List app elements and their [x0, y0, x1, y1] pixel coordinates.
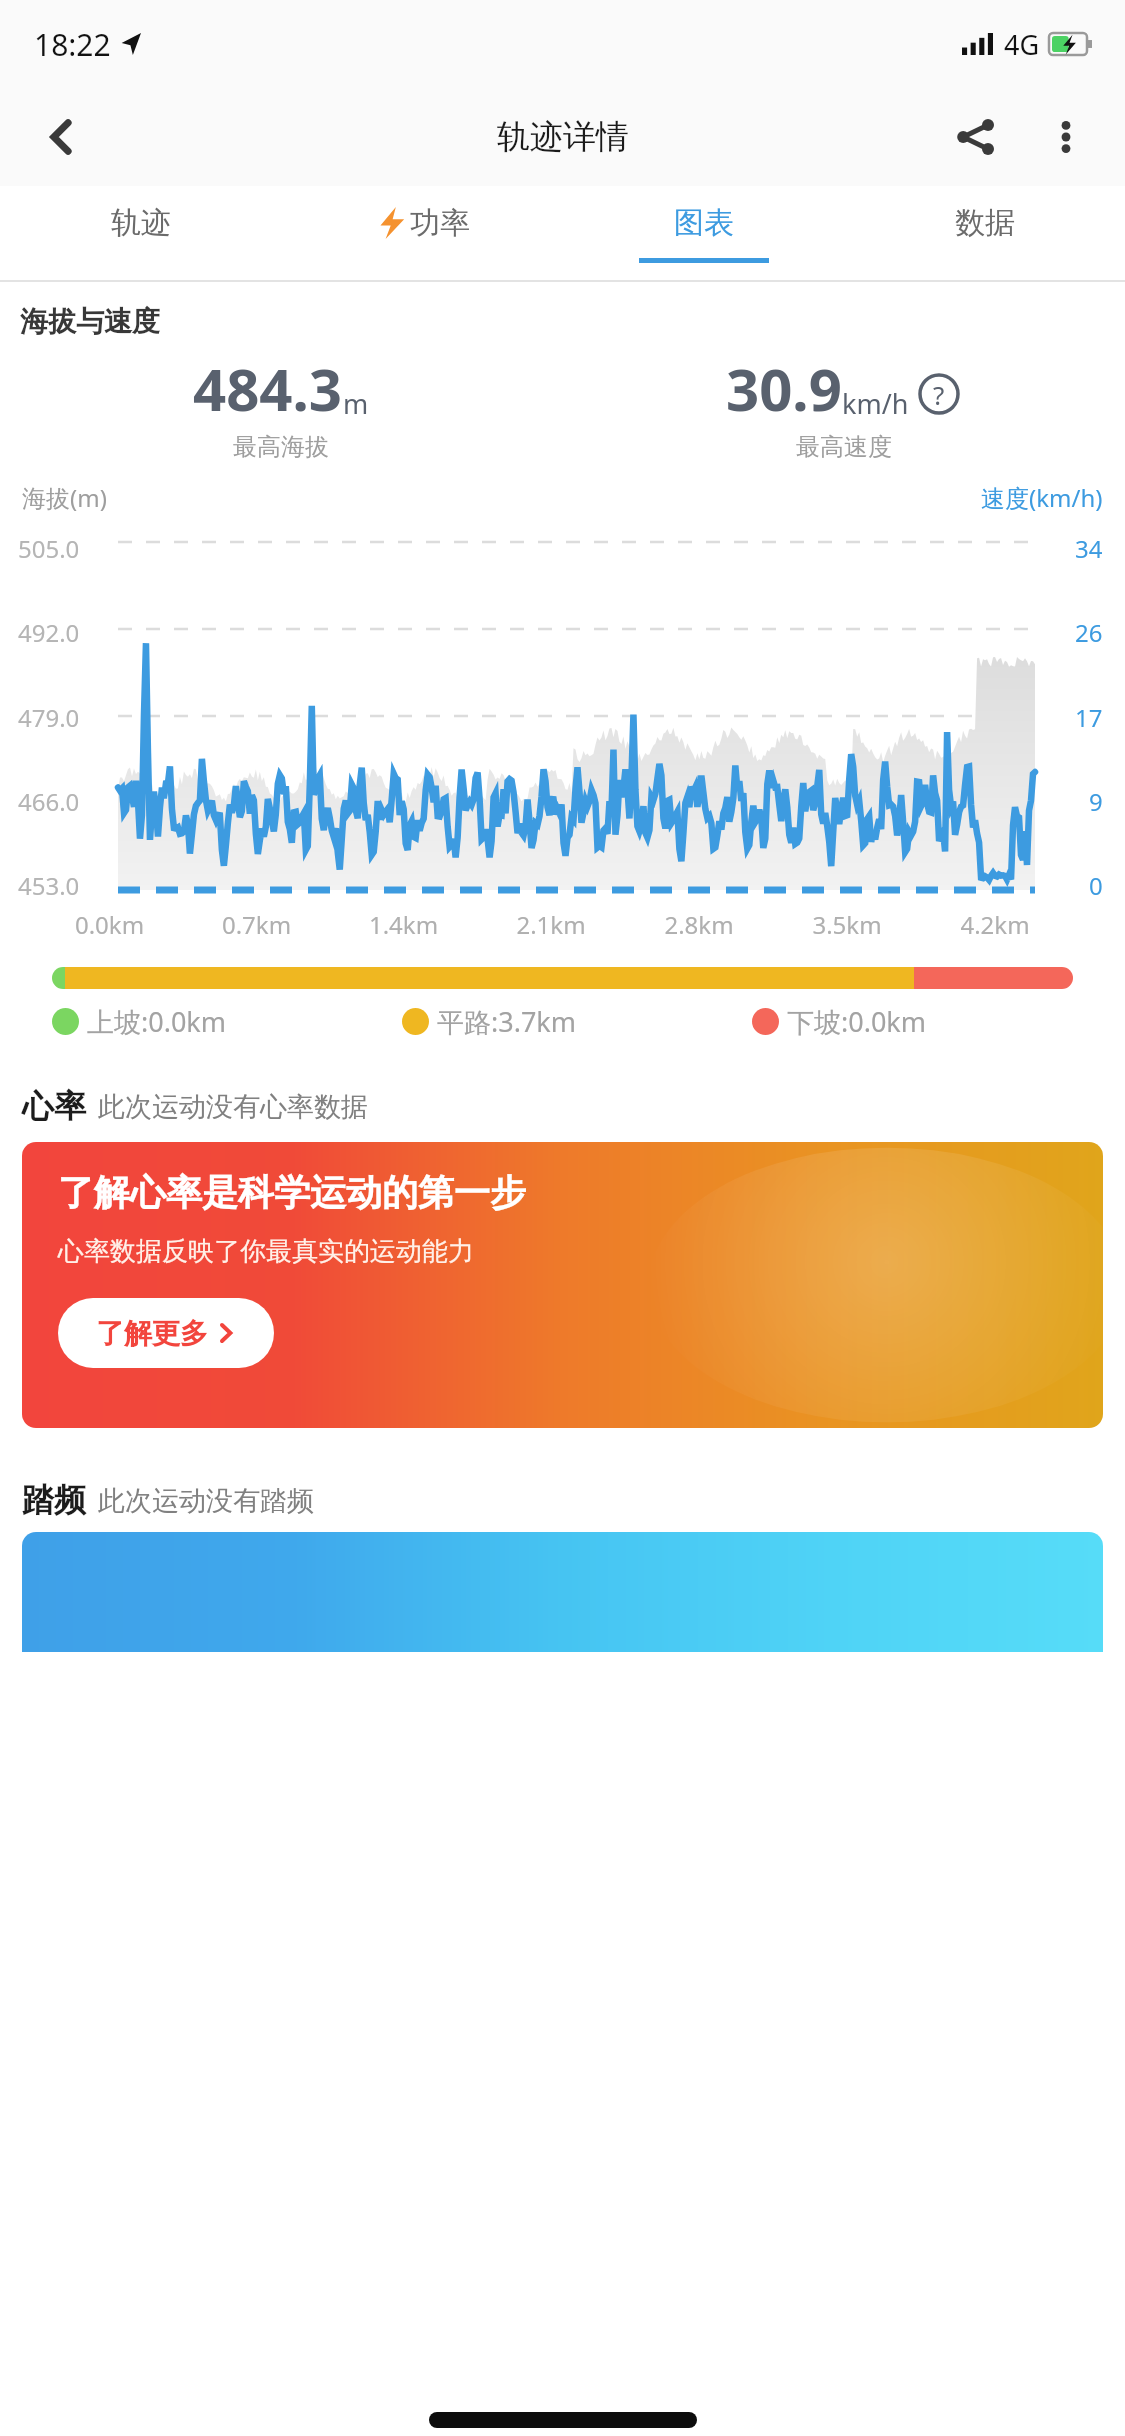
staticText: 最高海拔 — [233, 432, 329, 462]
staticText: 了解心率是科学运动的第一步 — [58, 1170, 526, 1215]
staticText: 26 — [1075, 616, 1103, 649]
staticText: 18:22 — [34, 24, 111, 65]
staticText: 功率 — [410, 204, 470, 242]
staticText: m — [343, 385, 369, 422]
staticText: 速度(km/h) — [981, 481, 1103, 514]
staticText: 最高速度 — [796, 432, 892, 462]
staticText: 轨迹 — [111, 204, 171, 242]
staticText: 踏频 — [22, 1480, 86, 1520]
staticText: 34 — [1075, 532, 1103, 565]
button[interactable]: 下坡:0.0km — [752, 1003, 1085, 1040]
staticText: 505.0 — [18, 532, 80, 565]
button[interactable]: Help — [917, 372, 961, 416]
staticText: 453.0 — [18, 869, 80, 902]
staticText: 此次运动没有踏频 — [98, 1484, 314, 1518]
button[interactable]: 轨迹 — [0, 186, 282, 280]
button[interactable] — [22, 1532, 1103, 1652]
staticText: ? — [933, 377, 945, 412]
staticText: 下坡:0.0km — [787, 1003, 927, 1040]
staticText: 466.0 — [18, 785, 80, 818]
staticText: 4.2km — [921, 908, 1069, 941]
button[interactable]: 功率 — [282, 186, 563, 280]
staticText: 2.8km — [625, 908, 773, 941]
staticText: 4G — [1004, 26, 1040, 63]
button[interactable]: Back — [22, 97, 102, 177]
staticText: 484.3 — [193, 349, 343, 428]
staticText: 海拔(m) — [22, 481, 107, 514]
staticText: 图表 — [674, 204, 734, 242]
button[interactable]: 了解更多 — [58, 1298, 274, 1368]
button[interactable]: Share — [931, 92, 1021, 182]
staticText: 心率 — [22, 1086, 86, 1126]
button[interactable]: 平路:3.7km — [402, 1003, 752, 1040]
staticText: 0.7km — [183, 908, 330, 941]
staticText: 海拔与速度 — [20, 304, 160, 339]
staticText: 479.0 — [18, 701, 80, 734]
staticText: 9 — [1089, 785, 1103, 818]
button[interactable]: More options — [1021, 92, 1111, 182]
staticText: 上坡:0.0km — [87, 1003, 227, 1040]
staticText: 492.0 — [18, 616, 80, 649]
staticText: 0 — [1089, 869, 1103, 902]
staticText: 2.1km — [477, 908, 625, 941]
staticText: 轨迹详情 — [497, 116, 629, 158]
button[interactable]: 了解心率是科学运动的第一步 — [22, 1142, 1103, 1428]
staticText: 0.0km — [36, 908, 183, 941]
staticText: 心率数据反映了你最真实的运动能力 — [58, 1235, 474, 1268]
staticText: 此次运动没有心率数据 — [98, 1090, 368, 1124]
button[interactable]: 数据 — [844, 186, 1125, 280]
staticText: 3.5km — [773, 908, 921, 941]
button[interactable]: 图表 — [563, 186, 844, 280]
staticText: 平路:3.7km — [437, 1003, 577, 1040]
staticText: 了解更多 — [96, 1316, 208, 1351]
staticText: 数据 — [955, 204, 1015, 242]
staticText: 1.4km — [330, 908, 477, 941]
staticText: 30.9 — [726, 349, 842, 428]
button[interactable]: 上坡:0.0km — [52, 1003, 402, 1040]
staticText: 17 — [1075, 701, 1103, 734]
staticText: km/h — [842, 385, 909, 422]
